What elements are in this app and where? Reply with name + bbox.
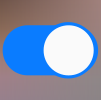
button[interactable]: Toggle, on bbox=[0, 0, 101, 100]
